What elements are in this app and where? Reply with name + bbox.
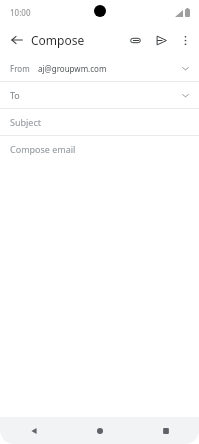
staticText: Compose email: [10, 143, 76, 155]
button[interactable]: More options: [174, 29, 196, 51]
staticText: aj@groupwm.com: [38, 63, 107, 74]
staticText: Subject: [10, 116, 42, 128]
button[interactable]: Compose email: [0, 136, 199, 162]
button[interactable]: From: [0, 56, 199, 81]
button[interactable]: To: [0, 82, 199, 108]
button[interactable]: Back: [6, 29, 28, 51]
staticText: To: [10, 89, 20, 101]
staticText: From: [10, 63, 30, 74]
button[interactable]: Home: [67, 417, 133, 444]
button[interactable]: Attach file: [124, 29, 146, 51]
button[interactable]: Back: [0, 417, 67, 444]
button[interactable]: Subject: [0, 109, 199, 135]
button[interactable]: Recent apps: [133, 417, 199, 444]
staticText: Compose: [31, 32, 85, 48]
button[interactable]: Send: [150, 29, 172, 51]
staticText: 10:00: [10, 7, 31, 18]
